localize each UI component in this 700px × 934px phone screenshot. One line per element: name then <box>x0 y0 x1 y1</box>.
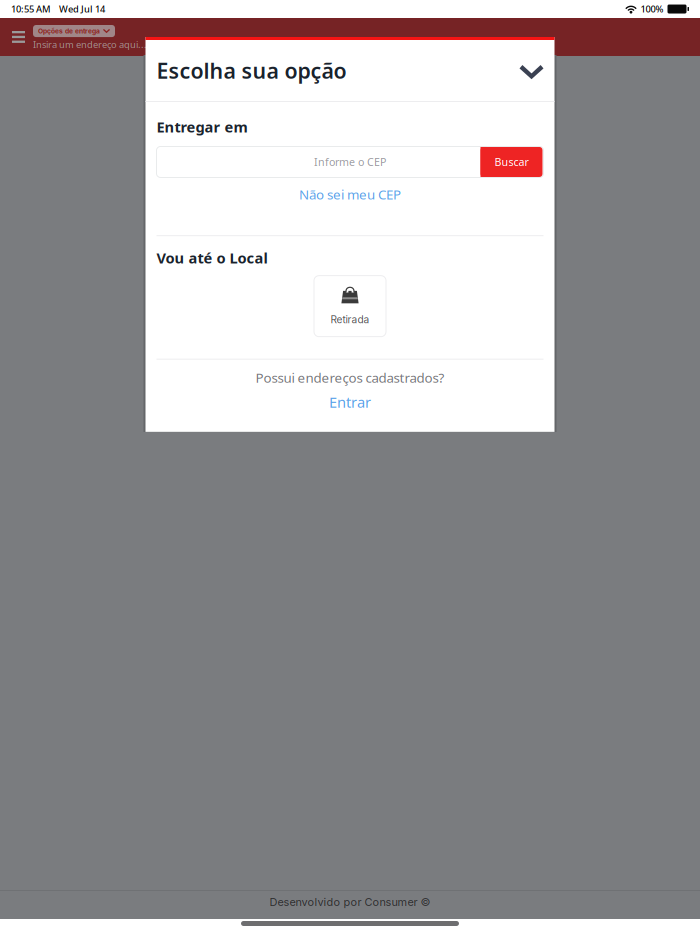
staticText: Insira um endereço aqui... <box>33 38 147 50</box>
staticText: Escolha sua opção <box>156 56 346 85</box>
button[interactable]: Buscar <box>480 147 542 177</box>
staticText: Vou até o Local <box>156 248 267 268</box>
staticText: Wed Jul 14 <box>59 3 105 15</box>
staticText: Informe o CEP <box>314 155 386 169</box>
staticText: Opções de entrega <box>38 27 100 35</box>
button[interactable]: Não sei meu CEP <box>156 178 543 216</box>
staticText: Desenvolvido por Consumer © <box>269 895 430 909</box>
staticText: Retirada <box>330 313 369 326</box>
staticText: 10:55 AM <box>11 3 51 15</box>
button[interactable]: Opções de entrega <box>33 25 115 37</box>
staticText: Entrar <box>329 392 371 412</box>
staticText: Não sei meu CEP <box>299 185 401 203</box>
staticText: Buscar <box>494 155 528 169</box>
button[interactable]: Entrar <box>329 386 371 414</box>
button[interactable]: Menu <box>0 18 33 51</box>
button[interactable]: Fechar <box>509 57 543 84</box>
staticText: 100% <box>640 3 663 15</box>
staticText: Entregar em <box>156 117 247 136</box>
button[interactable]: Retirada <box>314 276 386 337</box>
staticText: Possui endereços cadastrados? <box>255 369 444 386</box>
